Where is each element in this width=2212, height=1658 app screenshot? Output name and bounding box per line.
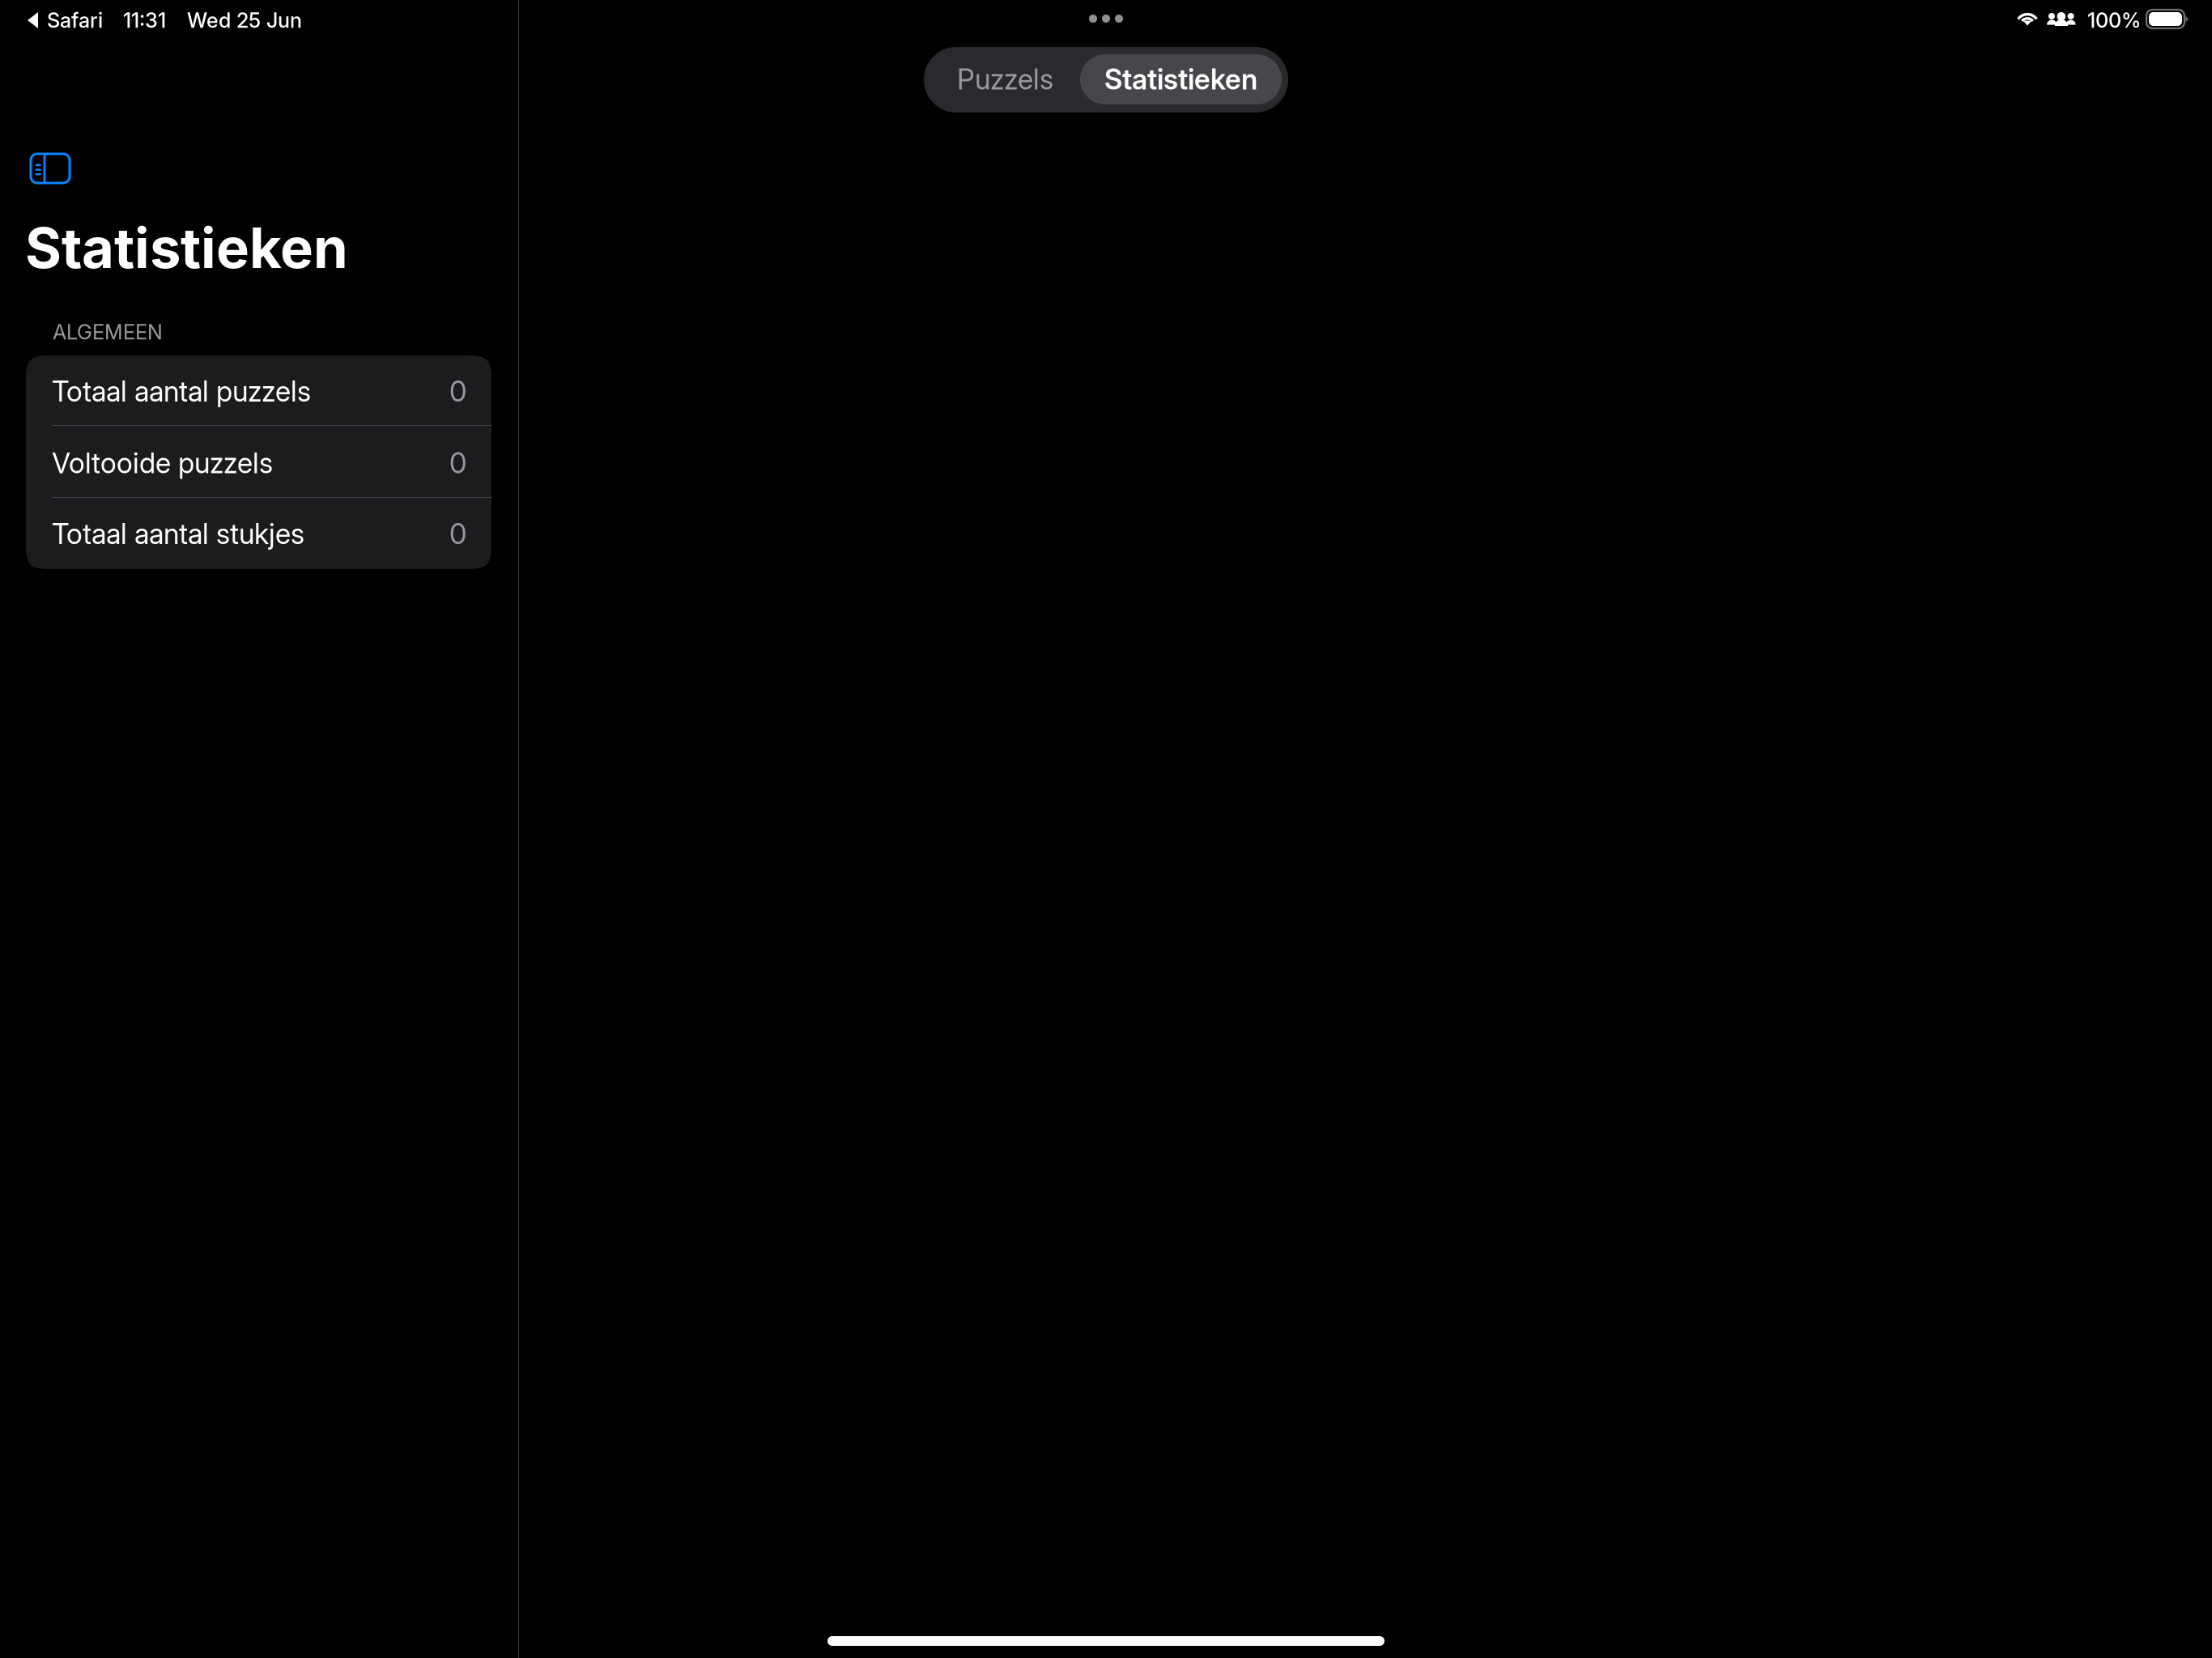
button[interactable]: Totaal aantal stukjes <box>26 498 491 570</box>
staticText: 0 <box>449 446 466 480</box>
staticText: 100% <box>2087 8 2141 33</box>
staticText: Safari <box>47 8 103 33</box>
staticText: Totaal aantal puzzels <box>52 374 311 408</box>
button[interactable]: Toggle Sidebar <box>21 144 79 193</box>
button[interactable]: Safari <box>28 8 302 32</box>
button[interactable]: Totaal aantal puzzels <box>26 355 491 425</box>
staticText: 0 <box>449 374 466 408</box>
button[interactable]: Puzzels <box>930 54 1080 104</box>
staticText: Wed 25 Jun <box>187 8 302 33</box>
button[interactable]: Statistieken <box>1080 54 1282 104</box>
staticText: Statistieken <box>1104 62 1257 96</box>
staticText: Statistieken <box>25 214 348 281</box>
staticText: Voltooide puzzels <box>52 446 273 480</box>
staticText: Puzzels <box>957 62 1053 96</box>
staticText: 0 <box>449 517 466 551</box>
staticText: Totaal aantal stukjes <box>52 517 304 551</box>
button[interactable]: Voltooide puzzels <box>26 426 491 497</box>
staticText: 11:31 <box>123 8 166 33</box>
staticText: ALGEMEEN <box>53 320 163 344</box>
